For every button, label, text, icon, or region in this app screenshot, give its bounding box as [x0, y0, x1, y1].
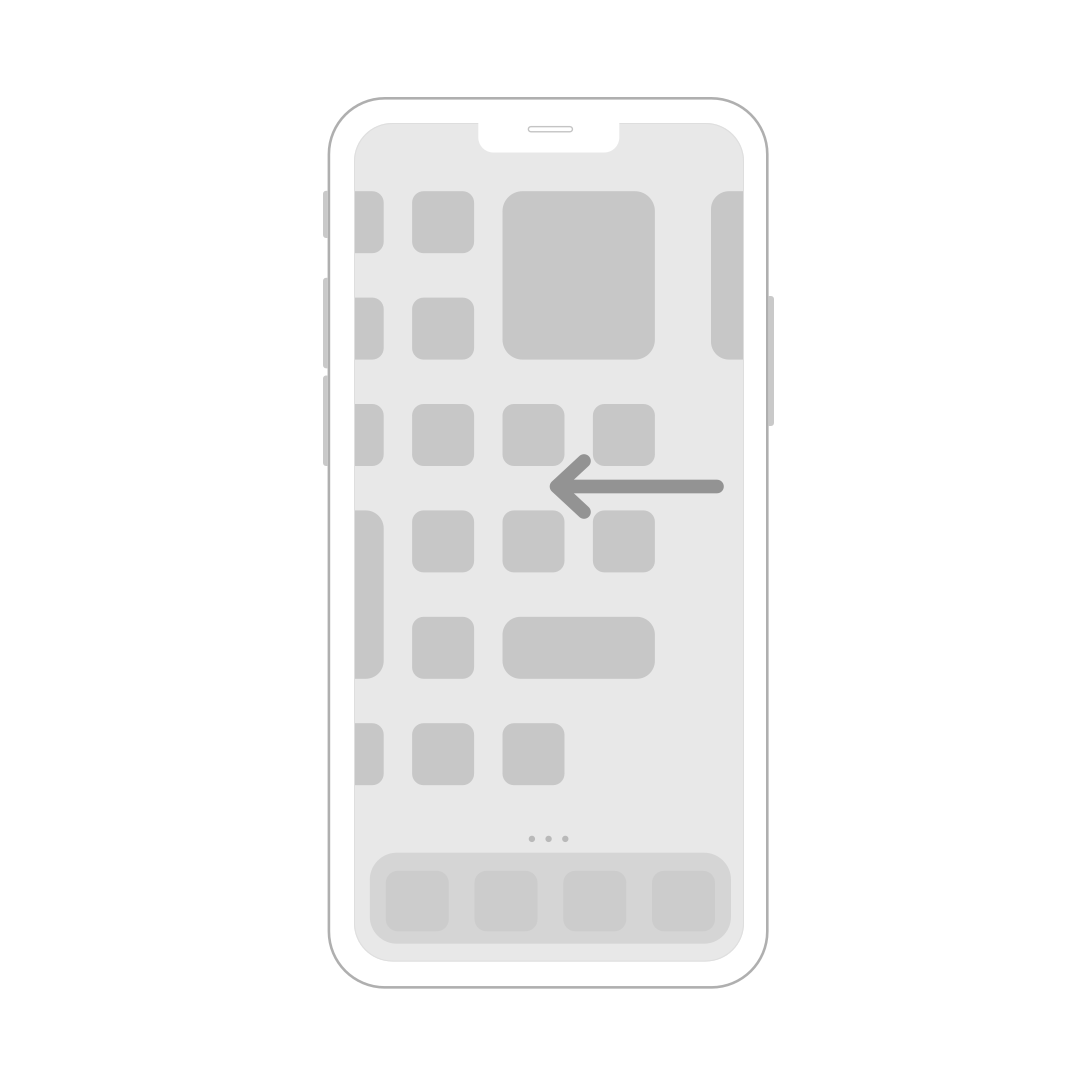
button[interactable]: App: [412, 723, 474, 785]
button[interactable]: App: [593, 510, 655, 572]
button[interactable]: App: [502, 404, 564, 466]
button[interactable]: App: [412, 404, 474, 466]
button[interactable]: App: [322, 191, 384, 253]
button[interactable]: Widget: [322, 510, 384, 679]
button[interactable]: App: [322, 404, 384, 466]
button[interactable]: App: [322, 723, 384, 785]
button[interactable]: Wide widget: [502, 617, 655, 679]
button[interactable]: App: [412, 617, 474, 679]
button[interactable]: App: [412, 298, 474, 360]
button[interactable]: App: [593, 404, 655, 466]
button[interactable]: App: [502, 723, 564, 785]
button[interactable]: Large widget: [502, 191, 655, 360]
button[interactable]: Widget: [711, 191, 783, 360]
button[interactable]: App: [412, 191, 474, 253]
button[interactable]: App: [502, 510, 564, 572]
button[interactable]: App: [322, 298, 384, 360]
button[interactable]: App: [412, 510, 474, 572]
